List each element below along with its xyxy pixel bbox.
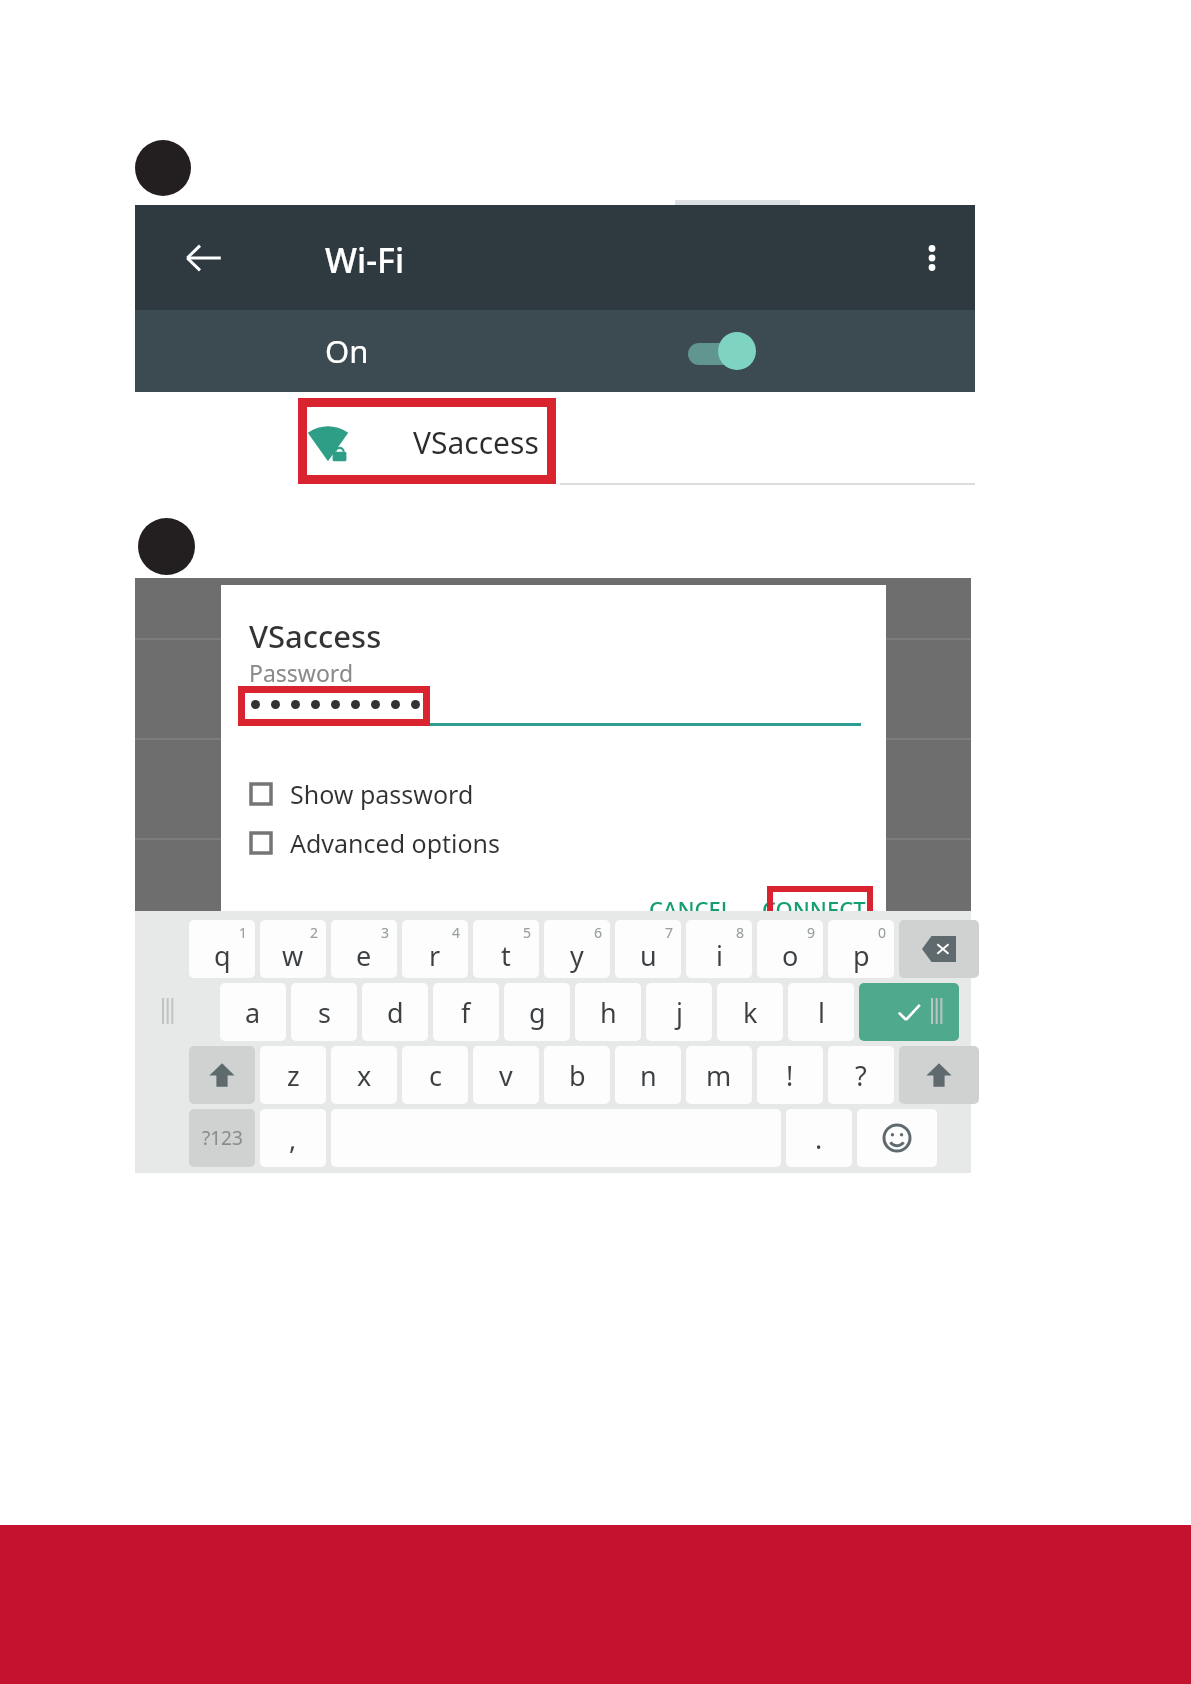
staticText: f — [461, 994, 471, 1031]
button[interactable]: j — [646, 983, 712, 1041]
staticText: i — [716, 937, 723, 974]
button[interactable]: 7 — [615, 920, 681, 978]
button[interactable]: Back — [163, 205, 245, 310]
button[interactable]: On — [135, 310, 975, 392]
button[interactable]: VSaccess — [305, 392, 805, 492]
staticText: e — [356, 937, 372, 974]
staticText: . — [815, 1120, 823, 1157]
button[interactable]: 3 — [331, 920, 397, 978]
staticText: x — [357, 1057, 372, 1094]
button[interactable]: , — [260, 1109, 326, 1167]
staticText: 2 — [310, 923, 319, 942]
staticText: j — [676, 994, 683, 1031]
button[interactable]: Show password — [249, 775, 579, 813]
button[interactable]: ?123 — [189, 1109, 255, 1167]
staticText: ! — [786, 1057, 794, 1094]
button[interactable]: 6 — [544, 920, 610, 978]
button[interactable]: f — [433, 983, 499, 1041]
button[interactable]: 9 — [757, 920, 823, 978]
button[interactable]: ? — [828, 1046, 894, 1104]
button[interactable]: 5 — [473, 920, 539, 978]
staticText: b — [569, 1057, 586, 1094]
button[interactable]: n — [615, 1046, 681, 1104]
staticText: ?123 — [202, 1125, 243, 1151]
staticText: VSaccess — [413, 422, 539, 463]
button[interactable]: b — [544, 1046, 610, 1104]
staticText: 7 — [665, 923, 674, 942]
staticText: a — [245, 994, 261, 1031]
button[interactable]: ! — [757, 1046, 823, 1104]
staticText: r — [429, 937, 441, 974]
staticText: CANCEL — [649, 894, 733, 924]
button[interactable]: a — [220, 983, 286, 1041]
button[interactable]: z — [260, 1046, 326, 1104]
staticText: l — [818, 994, 825, 1031]
staticText: Advanced options — [290, 826, 501, 860]
button[interactable]: 2 — [260, 920, 326, 978]
staticText: 3 — [381, 923, 390, 942]
staticText: On — [325, 330, 369, 372]
button[interactable]: Backspace — [899, 920, 979, 978]
button[interactable]: d — [362, 983, 428, 1041]
staticText: Password — [249, 657, 354, 688]
button[interactable]: m — [686, 1046, 752, 1104]
staticText: Wi-Fi — [325, 237, 405, 283]
staticText: 4 — [452, 923, 461, 942]
staticText: 9 — [807, 923, 816, 942]
button[interactable]: CONNECT — [759, 888, 869, 930]
staticText: g — [529, 994, 546, 1031]
staticText: h — [600, 994, 617, 1031]
staticText: w — [282, 937, 304, 974]
button[interactable]: c — [402, 1046, 468, 1104]
button[interactable]: 0 — [828, 920, 894, 978]
staticText: VSaccess — [249, 615, 382, 657]
staticText: c — [429, 1057, 442, 1094]
staticText: v — [499, 1057, 513, 1094]
staticText: q — [214, 937, 231, 974]
button[interactable]: Advanced options — [249, 824, 579, 862]
staticText: u — [640, 937, 657, 974]
staticText: k — [743, 994, 758, 1031]
staticText: , — [289, 1120, 297, 1157]
button[interactable]: v — [473, 1046, 539, 1104]
button[interactable]: l — [788, 983, 854, 1041]
button[interactable]: 4 — [402, 920, 468, 978]
button[interactable]: x — [331, 1046, 397, 1104]
button[interactable]: k — [717, 983, 783, 1041]
button[interactable]: CANCEL — [641, 888, 741, 930]
staticText: ? — [855, 1057, 867, 1094]
staticText: 5 — [523, 923, 532, 942]
button[interactable]: 8 — [686, 920, 752, 978]
button[interactable]: h — [575, 983, 641, 1041]
staticText: d — [387, 994, 404, 1031]
staticText: CONNECT — [762, 894, 866, 924]
staticText: Show password — [290, 777, 474, 811]
staticText: t — [501, 937, 511, 974]
staticText: y — [570, 937, 584, 974]
button[interactable]: Enter — [859, 983, 959, 1041]
button[interactable]: Emoji — [857, 1109, 937, 1167]
staticText: n — [640, 1057, 657, 1094]
staticText: p — [853, 937, 870, 974]
staticText: o — [782, 937, 799, 974]
staticText: 8 — [736, 923, 745, 942]
button[interactable]: g — [504, 983, 570, 1041]
staticText: 0 — [878, 923, 887, 942]
button[interactable]: More options — [889, 205, 975, 310]
staticText: 6 — [594, 923, 603, 942]
button[interactable]: s — [291, 983, 357, 1041]
button[interactable]: 1 — [189, 920, 255, 978]
staticText: m — [706, 1057, 732, 1094]
staticText: s — [318, 994, 331, 1031]
staticText: z — [287, 1057, 300, 1094]
button[interactable]: Shift — [189, 1046, 255, 1104]
staticText: 1 — [239, 923, 248, 942]
button[interactable]: . — [786, 1109, 852, 1167]
button[interactable]: Shift — [899, 1046, 979, 1104]
